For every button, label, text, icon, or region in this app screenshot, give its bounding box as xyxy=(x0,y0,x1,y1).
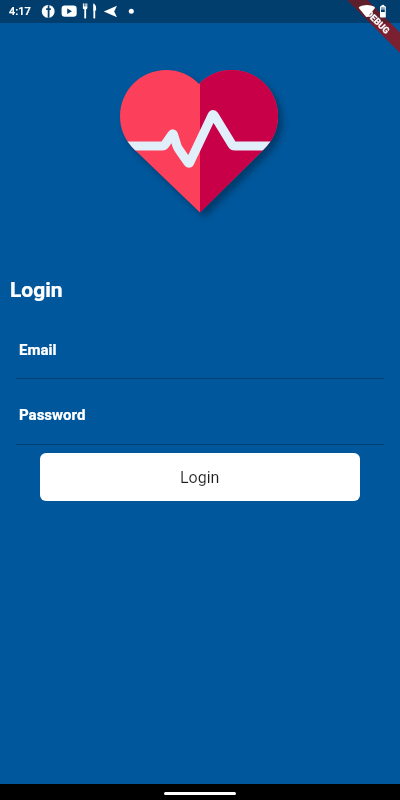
staticText: 4:17 xyxy=(9,5,31,18)
staticText: Password xyxy=(19,406,86,424)
button[interactable]: Login xyxy=(40,453,360,501)
staticText: DEBUG xyxy=(363,8,392,37)
staticText: Email xyxy=(19,341,57,359)
staticText: Login xyxy=(180,468,220,487)
staticText: Login xyxy=(10,278,63,303)
